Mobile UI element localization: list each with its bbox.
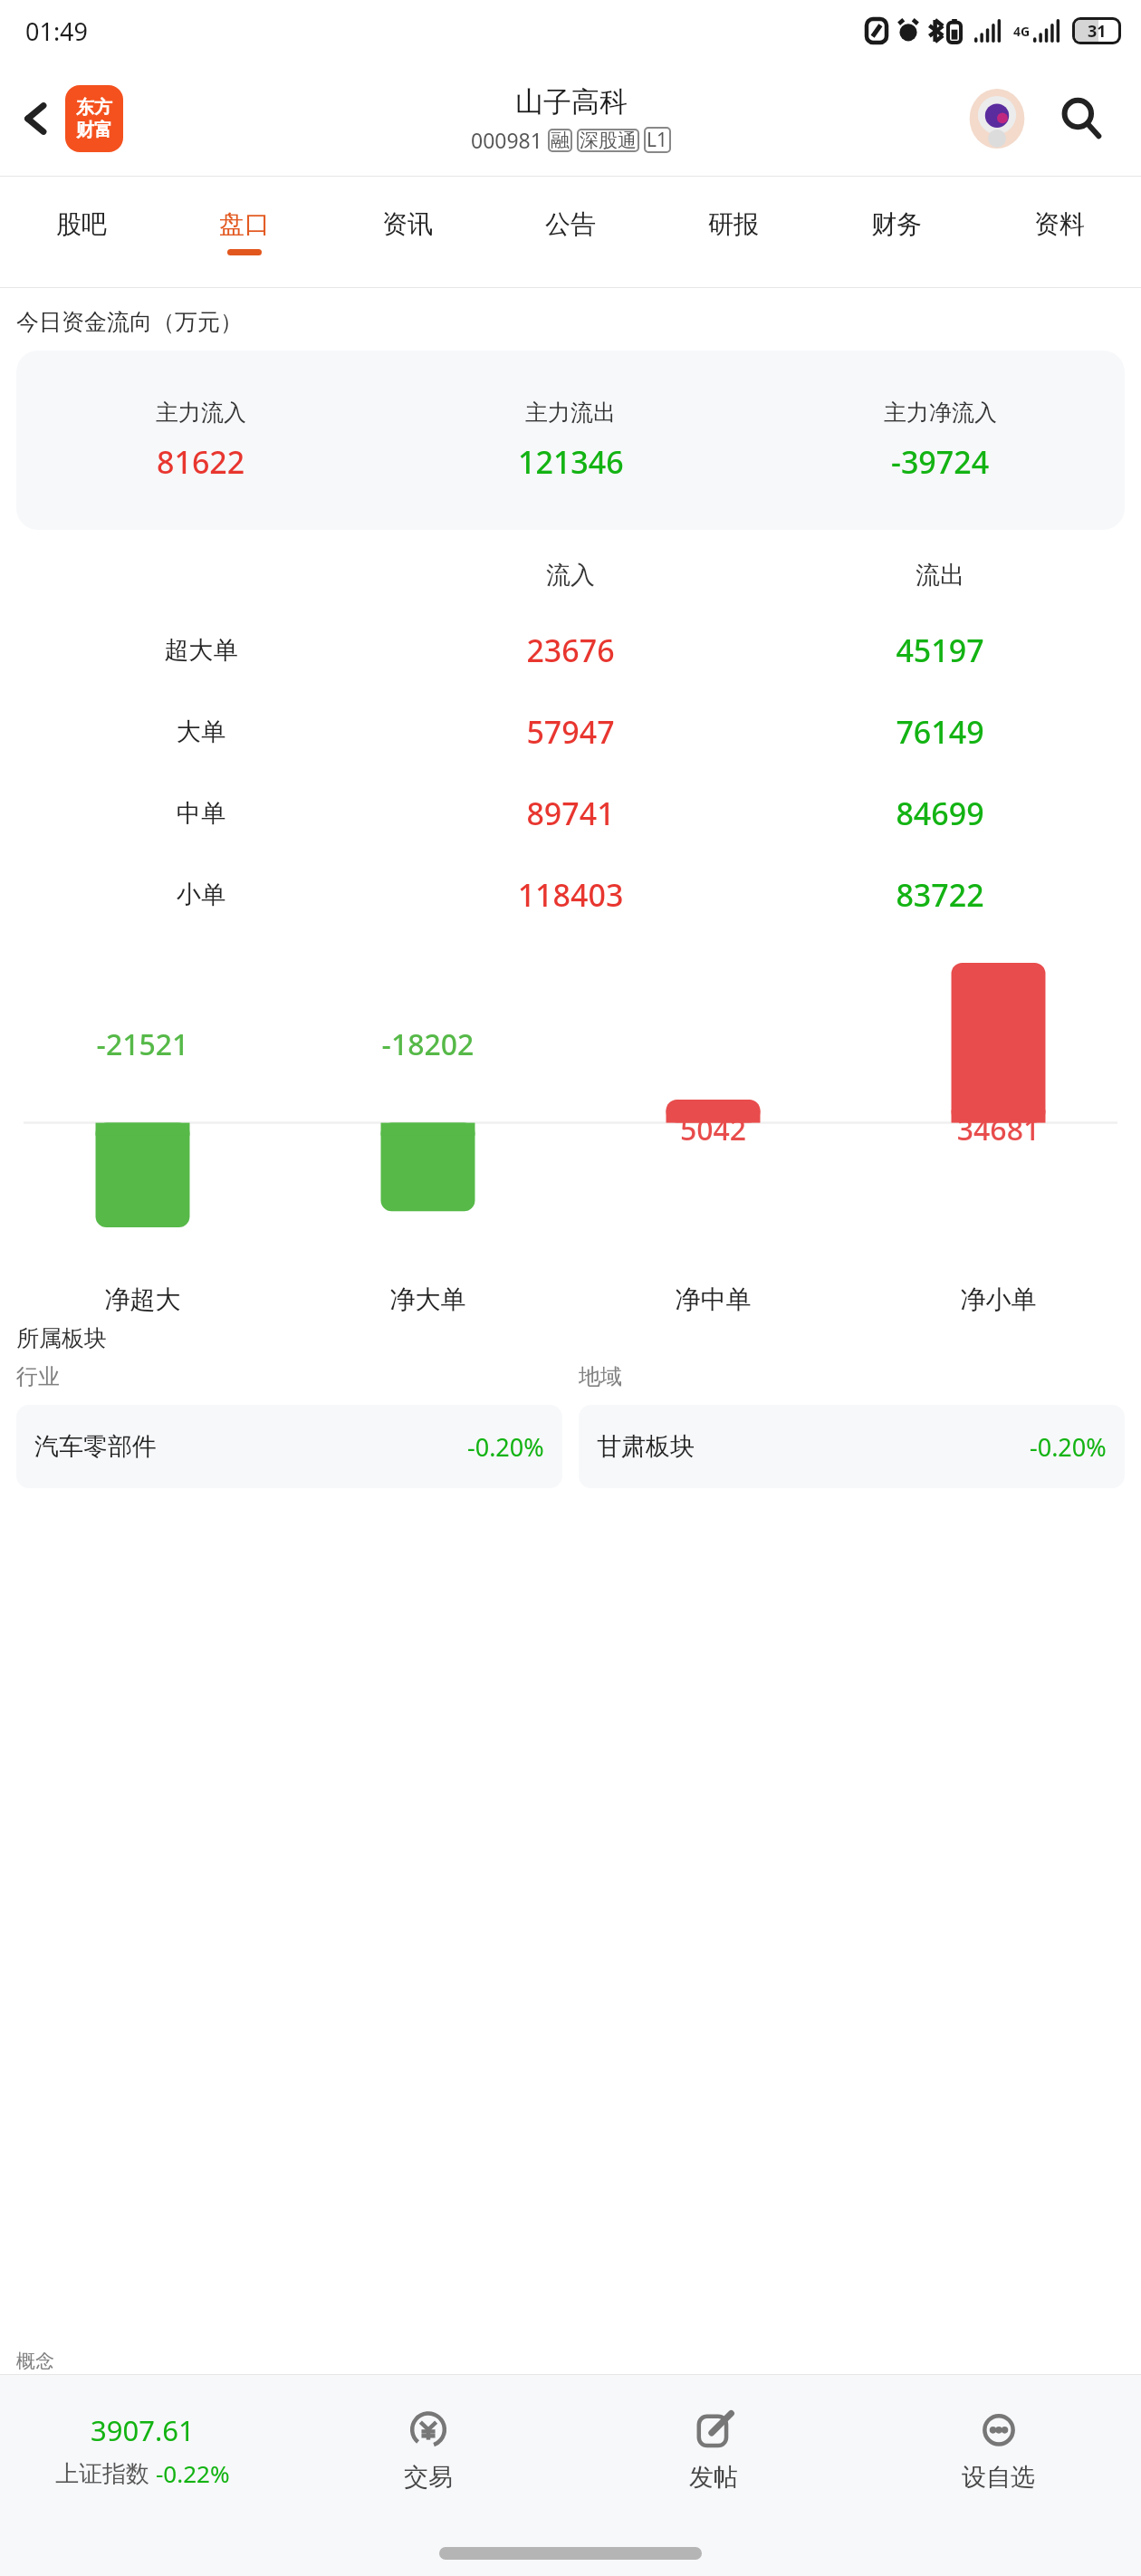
staticText: 今日资金流向（万元） <box>16 308 243 336</box>
button[interactable]: 公告 <box>489 177 652 287</box>
staticText: 发帖 <box>689 2462 738 2493</box>
staticText: 主力流入 <box>156 399 246 427</box>
staticText: 34681 <box>856 1110 1141 1149</box>
staticText: 3907.61 <box>91 2411 195 2449</box>
button[interactable]: 个人头像 <box>964 85 1031 152</box>
staticText: 流入 <box>386 560 755 591</box>
staticText: 净大单 <box>285 1283 570 1315</box>
staticText: 深股通 <box>580 129 637 152</box>
button[interactable]: 发帖 <box>570 2408 856 2493</box>
staticText: 超大单 <box>16 635 386 666</box>
staticText: 设自选 <box>962 2462 1035 2493</box>
button[interactable]: 3907.61 <box>0 2411 285 2489</box>
staticText: 净中单 <box>570 1283 856 1315</box>
staticText: 财富 <box>76 119 112 141</box>
staticText: 股吧 <box>56 208 107 240</box>
staticText: 01:49 <box>25 14 89 48</box>
staticText: 地域 <box>579 1363 1125 1390</box>
staticText: -0.20% <box>1030 1430 1107 1464</box>
staticText: 资讯 <box>382 208 433 240</box>
staticText: 流出 <box>755 560 1125 591</box>
staticText: -0.22% <box>156 2457 230 2489</box>
staticText: 净超大 <box>0 1283 285 1315</box>
staticText: 中单 <box>16 798 386 829</box>
staticText: 主力流出 <box>525 399 616 427</box>
button[interactable]: 大单 <box>16 691 1125 773</box>
staticText: 76149 <box>755 711 1125 753</box>
staticText: 57947 <box>386 711 755 753</box>
staticText: 研报 <box>708 208 759 240</box>
staticText: 所属板块 <box>16 1324 107 1352</box>
button[interactable]: 设自选 <box>856 2408 1141 2493</box>
staticText: 净小单 <box>856 1283 1141 1315</box>
staticText: 财务 <box>871 208 922 240</box>
staticText: 行业 <box>16 1363 562 1390</box>
button[interactable]: 资料 <box>978 177 1141 287</box>
staticText: 89741 <box>386 793 755 834</box>
staticText: 31 <box>1088 20 1107 42</box>
button[interactable]: 汽车零部件 <box>16 1405 562 1488</box>
staticText: -39724 <box>891 441 990 483</box>
staticText: 4G <box>1013 23 1031 40</box>
button[interactable]: 小单 <box>16 854 1125 936</box>
staticText: 121346 <box>518 441 624 483</box>
staticText: 交易 <box>404 2462 453 2493</box>
staticText: 汽车零部件 <box>34 1431 157 1462</box>
staticText: 公告 <box>545 208 596 240</box>
button[interactable]: 主力流入 <box>16 351 1125 530</box>
staticText: 盘口 <box>219 208 270 240</box>
button[interactable]: 返回 <box>7 90 65 148</box>
staticText: 上证指数 <box>55 2456 156 2489</box>
staticText: 资料 <box>1034 208 1085 240</box>
staticText: 45197 <box>755 630 1125 671</box>
button[interactable]: 甘肃板块 <box>579 1405 1125 1488</box>
button[interactable]: 盘口 <box>163 177 326 287</box>
staticText: 甘肃板块 <box>597 1431 695 1462</box>
staticText: 小单 <box>16 879 386 910</box>
staticText: L1 <box>647 127 668 153</box>
staticText: 主力净流入 <box>884 399 997 427</box>
staticText: 概念 <box>16 2350 54 2373</box>
staticText: 融 <box>551 129 570 152</box>
staticText: -21521 <box>0 1024 285 1064</box>
staticText: -18202 <box>285 1024 570 1064</box>
button[interactable]: 中单 <box>16 773 1125 854</box>
staticText: -0.20% <box>467 1430 544 1464</box>
button[interactable]: 股吧 <box>0 177 163 287</box>
staticText: 83722 <box>755 874 1125 916</box>
button[interactable]: 东方财富 <box>65 85 123 152</box>
button[interactable]: 交易 <box>285 2408 570 2493</box>
staticText: 000981 <box>471 126 542 154</box>
staticText: 84699 <box>755 793 1125 834</box>
staticText: 大单 <box>16 716 386 747</box>
button[interactable]: 研报 <box>652 177 815 287</box>
staticText: 5042 <box>570 1110 856 1149</box>
button[interactable]: 财务 <box>815 177 978 287</box>
staticText: 23676 <box>386 630 755 671</box>
button[interactable]: 资讯 <box>326 177 489 287</box>
button[interactable]: 搜索 <box>1047 84 1116 153</box>
staticText: 118403 <box>386 874 755 916</box>
button[interactable]: 超大单 <box>16 610 1125 691</box>
staticText: 山子高科 <box>515 84 628 120</box>
staticText: 东方 <box>76 96 112 119</box>
staticText: 81622 <box>157 441 245 483</box>
